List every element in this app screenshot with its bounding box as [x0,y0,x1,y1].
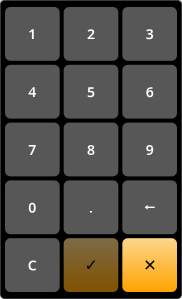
button[interactable]: C [5,238,60,292]
button[interactable]: 6 [122,65,177,119]
staticText: 1 [28,24,36,43]
staticText: 3 [146,24,154,43]
staticText: 2 [87,24,95,43]
button[interactable]: 8 [64,123,118,176]
staticText: 0 [28,198,36,217]
staticText: 6 [146,82,154,101]
button[interactable]: Cancel [122,238,177,292]
button[interactable]: Confirm [64,238,118,292]
button[interactable]: 3 [122,7,177,61]
button[interactable]: 1 [5,7,60,61]
button[interactable]: 5 [64,65,118,119]
staticText: 5 [87,82,95,101]
button[interactable]: 0 [5,180,60,234]
button[interactable]: Delete [122,180,177,234]
staticText: 4 [28,82,36,101]
staticText: 7 [28,140,36,159]
button[interactable]: 4 [5,65,60,119]
staticText: 8 [87,140,95,159]
staticText: . [89,198,93,217]
button[interactable]: 7 [5,123,60,176]
staticText: 9 [146,140,154,159]
button[interactable]: . [64,180,118,234]
staticText: ✕ [143,256,156,274]
button[interactable]: 9 [122,123,177,176]
staticText: ✓ [84,256,97,274]
staticText: C [28,256,37,275]
button[interactable]: 2 [64,7,118,61]
